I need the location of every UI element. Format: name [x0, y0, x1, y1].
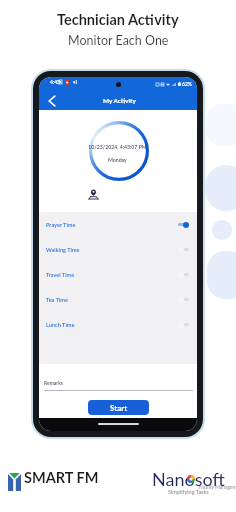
staticText: 4:43 — [50, 79, 60, 85]
staticText: 10/23/2024, 4:43:07 PM — [88, 144, 147, 150]
staticText: Remarks — [44, 380, 63, 386]
button[interactable]: Travel Time — [39, 262, 197, 287]
staticText: Tea Time — [46, 296, 68, 303]
staticText: My Activity — [103, 97, 136, 105]
staticText: Lunch Time — [46, 321, 75, 328]
button[interactable]: Start — [88, 400, 149, 415]
staticText: Start — [110, 403, 128, 413]
staticText: Facility Management — [24, 484, 236, 490]
staticText: Nanosoft — [152, 468, 225, 490]
button[interactable]: Tea Time — [39, 287, 197, 312]
staticText: Walking Time — [46, 246, 80, 253]
staticText: Technician Activity — [57, 11, 179, 28]
staticText: 62% — [182, 81, 192, 87]
staticText: SMART FM — [24, 469, 99, 486]
button[interactable]: Walking Time — [39, 237, 197, 262]
staticText: Monday — [108, 157, 127, 163]
staticText: Simplifying Tasks — [168, 489, 209, 496]
staticText: Prayer Time — [46, 221, 76, 228]
staticText: Travel Time — [46, 271, 75, 278]
button[interactable]: Lunch Time — [39, 312, 197, 337]
button[interactable]: Location — [88, 189, 99, 200]
button[interactable]: Back — [45, 94, 59, 108]
button[interactable]: Prayer Time — [39, 212, 197, 237]
staticText: Monitor Each One — [68, 33, 169, 48]
